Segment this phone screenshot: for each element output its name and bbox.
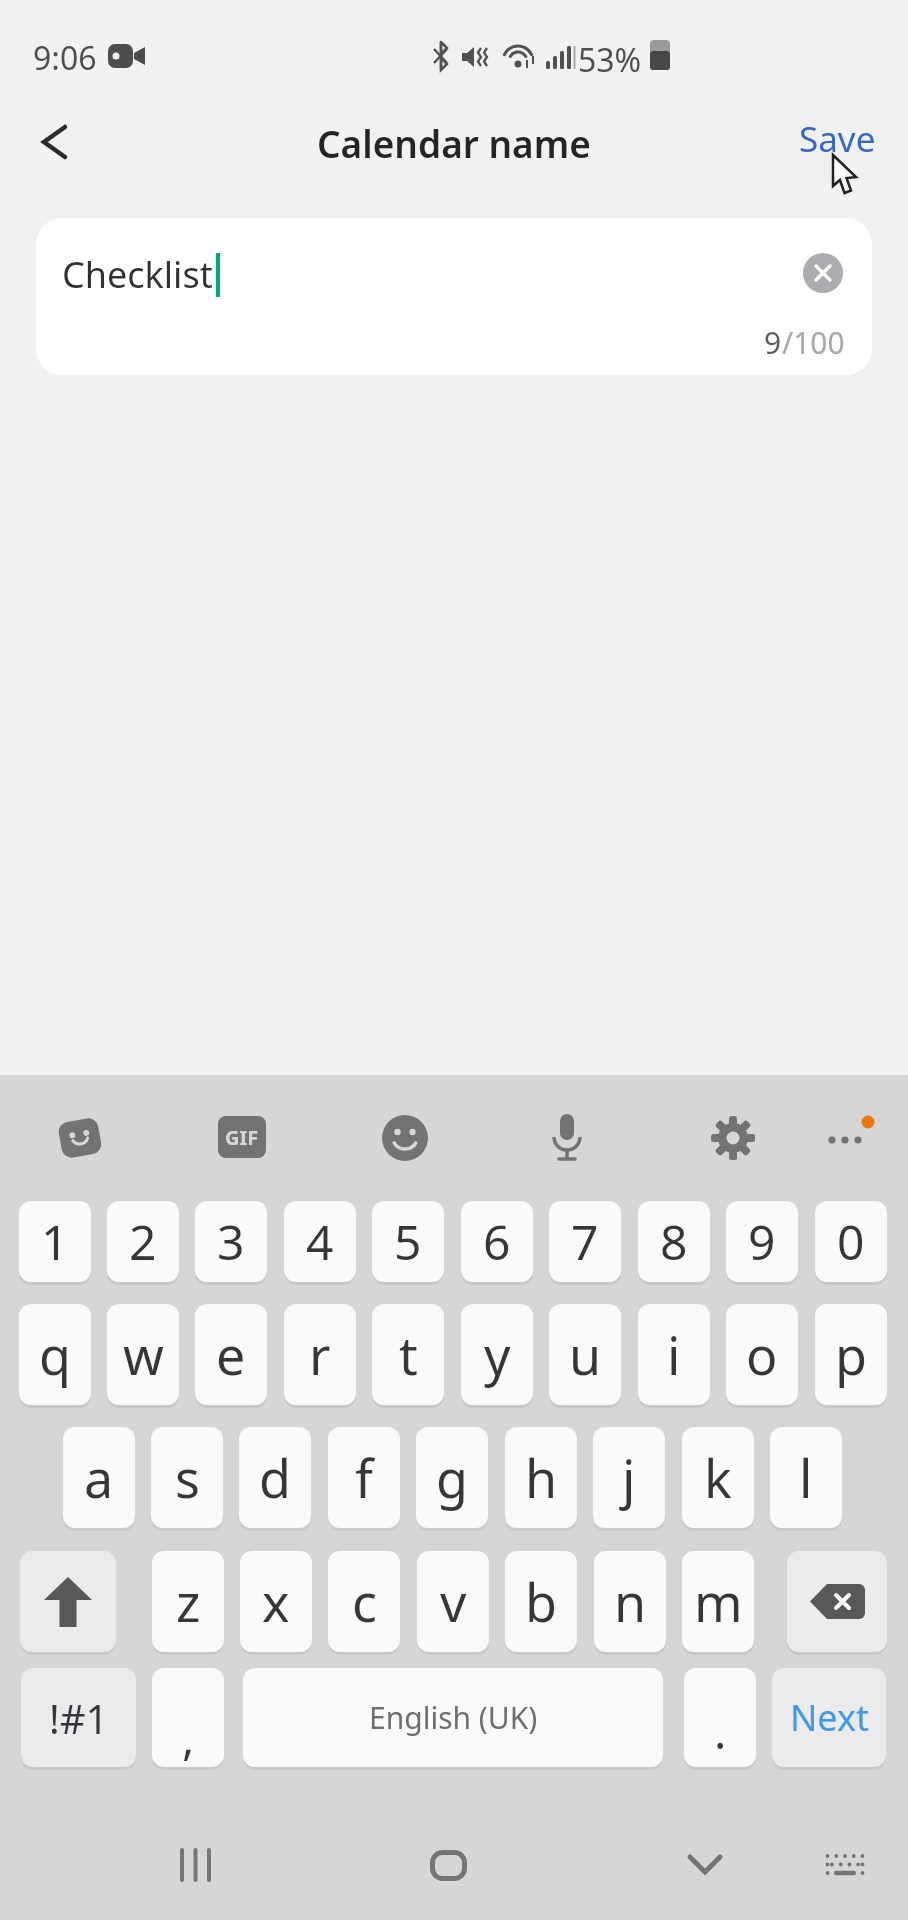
- button[interactable]: t: [372, 1304, 444, 1405]
- staticText: q: [39, 1319, 71, 1390]
- button[interactable]: !#1: [21, 1668, 136, 1767]
- staticText: y: [484, 1319, 511, 1390]
- button[interactable]: [20, 1551, 116, 1652]
- button[interactable]: k: [682, 1427, 754, 1528]
- button[interactable]: [24, 112, 88, 172]
- staticText: 6: [483, 1209, 511, 1274]
- button[interactable]: [381, 1114, 429, 1162]
- button[interactable]: g: [416, 1427, 488, 1528]
- button[interactable]: c: [328, 1551, 400, 1652]
- staticText: e: [216, 1319, 246, 1390]
- button[interactable]: b: [505, 1551, 577, 1652]
- button[interactable]: d: [239, 1427, 311, 1528]
- staticText: Save: [799, 115, 876, 163]
- staticText: 9: [764, 322, 782, 363]
- staticText: s: [175, 1442, 200, 1513]
- button[interactable]: u: [549, 1304, 621, 1405]
- button[interactable]: 2: [107, 1201, 179, 1282]
- staticText: 2: [129, 1209, 157, 1274]
- staticText: 7: [571, 1209, 599, 1274]
- staticText: a: [84, 1442, 114, 1513]
- button[interactable]: p: [815, 1304, 887, 1405]
- staticText: 9:06: [33, 36, 97, 80]
- button[interactable]: f: [328, 1427, 400, 1528]
- staticText: 0: [837, 1209, 865, 1274]
- staticText: z: [176, 1566, 201, 1637]
- button[interactable]: y: [461, 1304, 533, 1405]
- button[interactable]: w: [107, 1304, 179, 1405]
- button[interactable]: 5: [372, 1201, 444, 1282]
- staticText: f: [355, 1442, 373, 1513]
- button[interactable]: English (UK): [243, 1668, 663, 1767]
- button[interactable]: q: [19, 1304, 91, 1405]
- button[interactable]: [56, 1114, 104, 1162]
- staticText: Calendar name: [317, 118, 591, 168]
- button[interactable]: [408, 1825, 488, 1905]
- staticText: l: [799, 1442, 813, 1513]
- staticText: p: [835, 1319, 867, 1390]
- button[interactable]: 7: [549, 1201, 621, 1282]
- staticText: o: [746, 1319, 778, 1390]
- staticText: 4: [306, 1209, 334, 1274]
- staticText: j: [622, 1442, 636, 1513]
- staticText: x: [262, 1566, 290, 1637]
- staticText: m: [694, 1566, 743, 1637]
- button[interactable]: 1: [19, 1201, 91, 1282]
- button[interactable]: .: [684, 1668, 756, 1767]
- staticText: d: [259, 1442, 291, 1513]
- staticText: !#1: [49, 1691, 109, 1745]
- button[interactable]: e: [195, 1304, 267, 1405]
- button[interactable]: o: [726, 1304, 798, 1405]
- staticText: v: [440, 1566, 467, 1637]
- button[interactable]: Next: [772, 1668, 886, 1767]
- staticText: 8: [660, 1209, 688, 1274]
- button[interactable]: 0: [815, 1201, 887, 1282]
- button[interactable]: l: [770, 1427, 842, 1528]
- staticText: English (UK): [369, 1697, 538, 1738]
- staticText: 9: [748, 1209, 776, 1274]
- staticText: n: [614, 1566, 647, 1637]
- button[interactable]: r: [284, 1304, 356, 1405]
- button[interactable]: GIF: [218, 1116, 266, 1158]
- button[interactable]: 8: [638, 1201, 710, 1282]
- staticText: 5: [394, 1209, 422, 1274]
- button[interactable]: s: [151, 1427, 223, 1528]
- staticText: 3: [217, 1209, 245, 1274]
- staticText: .: [714, 1700, 727, 1763]
- button[interactable]: n: [594, 1551, 666, 1652]
- button[interactable]: 9: [726, 1201, 798, 1282]
- staticText: i: [667, 1319, 681, 1390]
- staticText: GIF: [225, 1124, 259, 1151]
- button[interactable]: v: [417, 1551, 489, 1652]
- button[interactable]: a: [63, 1427, 135, 1528]
- button[interactable]: i: [638, 1304, 710, 1405]
- button[interactable]: x: [240, 1551, 312, 1652]
- staticText: 1: [41, 1209, 69, 1274]
- button[interactable]: [545, 1112, 589, 1164]
- button[interactable]: [787, 1551, 887, 1652]
- staticText: r: [309, 1319, 331, 1390]
- button[interactable]: [803, 253, 843, 293]
- staticText: c: [352, 1566, 377, 1637]
- button[interactable]: Save: [782, 104, 892, 174]
- button[interactable]: ,: [152, 1668, 224, 1767]
- button[interactable]: [824, 1114, 880, 1162]
- button[interactable]: m: [682, 1551, 754, 1652]
- button[interactable]: [665, 1825, 745, 1905]
- button[interactable]: j: [593, 1427, 665, 1528]
- staticText: u: [569, 1319, 602, 1390]
- button[interactable]: [815, 1835, 875, 1895]
- button[interactable]: 4: [284, 1201, 356, 1282]
- staticText: Checklist: [62, 250, 213, 299]
- button[interactable]: Checklist: [36, 218, 872, 375]
- button[interactable]: [155, 1825, 235, 1905]
- staticText: g: [436, 1442, 468, 1513]
- staticText: 53%: [578, 38, 642, 82]
- button[interactable]: 6: [461, 1201, 533, 1282]
- staticText: h: [525, 1442, 558, 1513]
- button[interactable]: 3: [195, 1201, 267, 1282]
- staticText: /100: [782, 322, 845, 363]
- button[interactable]: h: [505, 1427, 577, 1528]
- button[interactable]: [709, 1114, 757, 1162]
- button[interactable]: z: [152, 1551, 224, 1652]
